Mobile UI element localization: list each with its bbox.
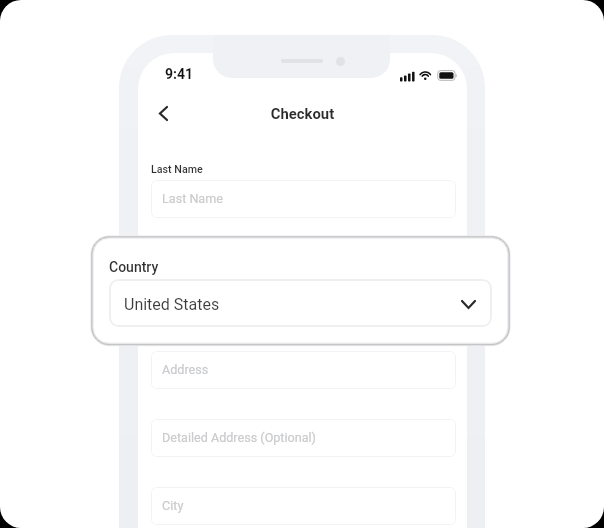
button[interactable]: Back (148, 99, 177, 128)
staticText: Detailed Address (Optional) (162, 430, 316, 445)
staticText: Address (162, 362, 209, 377)
button[interactable]: Last Name (151, 180, 456, 218)
button[interactable]: United States (109, 279, 492, 327)
staticText: Country (109, 259, 159, 275)
button[interactable]: City (151, 487, 456, 525)
staticText: 9:41 (165, 66, 194, 82)
button[interactable]: Address (151, 351, 456, 389)
staticText: United States (124, 295, 220, 314)
staticText: Last Name (151, 163, 203, 176)
staticText: Checkout (138, 105, 467, 122)
staticText: Last Name (162, 191, 223, 206)
staticText: City (162, 498, 184, 513)
button[interactable]: Detailed Address (Optional) (151, 419, 456, 457)
